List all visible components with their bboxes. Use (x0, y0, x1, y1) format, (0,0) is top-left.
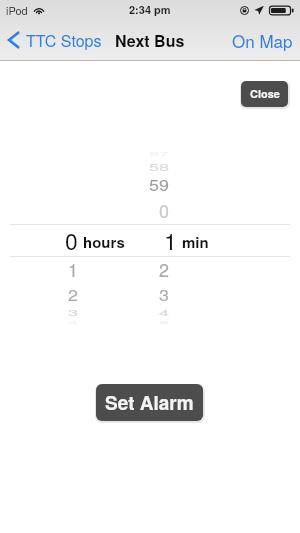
staticText: 2 (159, 256, 170, 282)
staticText: TTC Stops (26, 29, 102, 52)
staticText: 1 (68, 256, 79, 282)
staticText: 4 (68, 319, 79, 325)
other: Location (254, 5, 264, 15)
other: Wi-Fi (34, 6, 44, 14)
staticText: 59 (149, 173, 170, 195)
staticText: 1 (164, 224, 177, 255)
staticText: 0 (65, 224, 78, 255)
staticText: iPod (6, 2, 28, 18)
staticText: 2:34 pm (129, 2, 171, 18)
button[interactable]: On Map (225, 20, 300, 60)
staticText: min (182, 231, 209, 252)
staticText: 2 (68, 283, 79, 305)
staticText: 3 (68, 306, 79, 318)
staticText: hours (83, 231, 125, 252)
staticText: Next Bus (115, 29, 185, 52)
staticText: 4 (159, 306, 170, 318)
staticText: 57 (149, 151, 170, 157)
staticText: 3 (159, 283, 170, 305)
staticText: Set Alarm (105, 389, 194, 416)
staticText: On Map (232, 28, 293, 52)
staticText: 0 (159, 197, 170, 223)
button[interactable]: Set Alarm (96, 384, 203, 421)
button[interactable]: TTC Stops (0, 20, 110, 60)
staticText: 5 (159, 319, 170, 325)
other: Battery (269, 5, 294, 16)
staticText: 58 (149, 160, 170, 173)
button[interactable]: Close (241, 81, 288, 107)
staticText: Close (250, 86, 280, 102)
other: Rotation lock (240, 6, 249, 15)
